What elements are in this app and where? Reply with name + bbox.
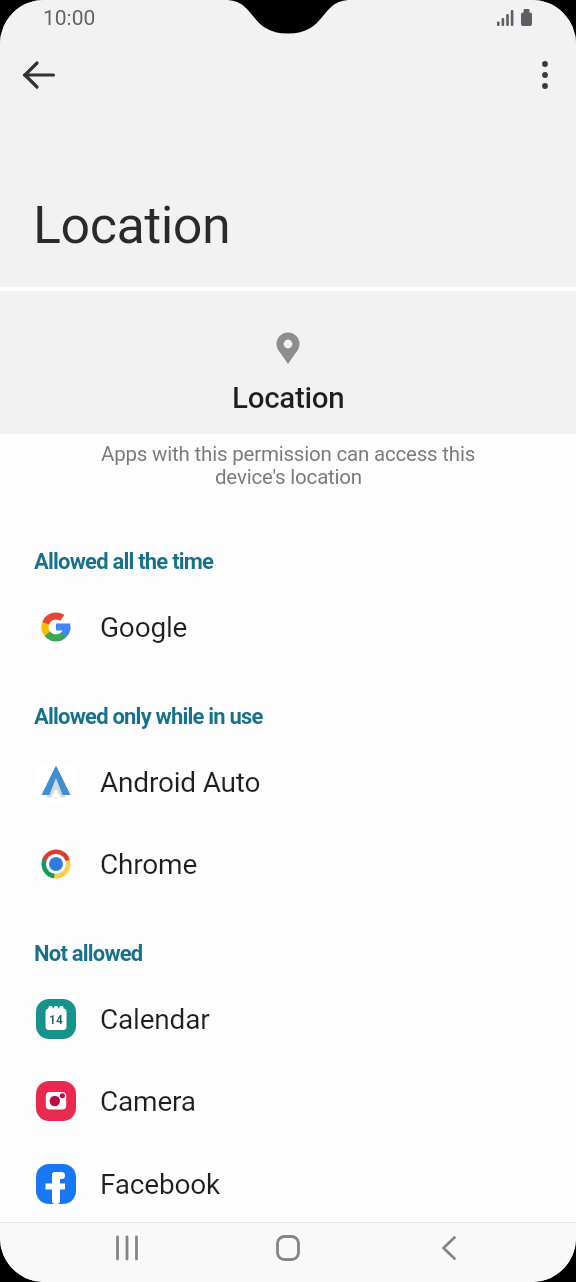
button[interactable]: Chrome <box>0 823 576 905</box>
button[interactable]: Google <box>0 586 576 668</box>
staticText: 14 <box>49 1013 63 1027</box>
staticText: Apps with this permission can access thi… <box>101 442 476 466</box>
staticText: Allowed only while in use <box>34 704 263 730</box>
staticText: device's location <box>215 465 362 489</box>
button[interactable]: 14 <box>0 978 576 1060</box>
staticText: Calendar <box>100 1003 210 1036</box>
button[interactable]: Android Auto <box>0 741 576 823</box>
staticText: Not allowed <box>34 941 143 967</box>
staticText: 10:00 <box>43 6 96 31</box>
staticText: Facebook <box>100 1168 220 1201</box>
staticText: Camera <box>100 1085 196 1118</box>
button[interactable] <box>248 1222 328 1282</box>
button[interactable]: Camera <box>0 1060 576 1142</box>
staticText: Allowed all the time <box>34 549 214 575</box>
button[interactable] <box>409 1222 489 1282</box>
button[interactable] <box>522 52 568 98</box>
button[interactable]: Facebook <box>0 1143 576 1225</box>
button[interactable] <box>87 1222 167 1282</box>
staticText: Location <box>33 195 231 256</box>
button[interactable] <box>16 52 62 98</box>
staticText: Android Auto <box>100 766 261 799</box>
staticText: Chrome <box>100 848 198 881</box>
staticText: Location <box>232 381 345 416</box>
staticText: Google <box>100 611 188 644</box>
